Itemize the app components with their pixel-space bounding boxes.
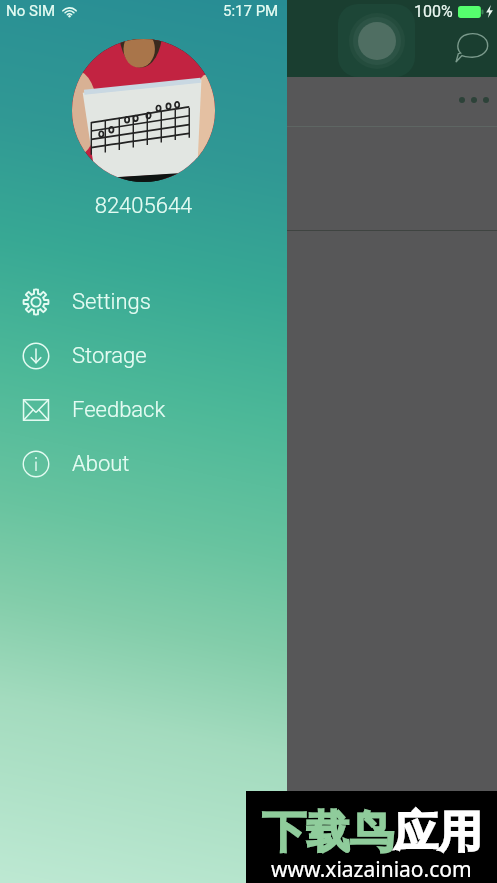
button[interactable]: Messages xyxy=(449,25,493,69)
staticText: 应用 xyxy=(394,805,482,860)
staticText: Storage xyxy=(72,343,147,369)
staticText: About xyxy=(72,451,130,477)
staticText: 100% xyxy=(414,2,453,21)
staticText: No SIM xyxy=(6,2,56,20)
staticText: Feedback xyxy=(72,397,166,423)
staticText: Settings xyxy=(72,289,151,315)
button[interactable]: About xyxy=(0,437,287,491)
button[interactable]: Feedback xyxy=(0,383,287,437)
staticText: 82405644 xyxy=(0,193,287,219)
button[interactable]: Storage xyxy=(0,329,287,383)
staticText: www.xiazainiao.com xyxy=(271,855,472,883)
staticText: 下载鸟 xyxy=(262,805,394,860)
button[interactable]: Profile xyxy=(338,4,415,77)
button[interactable]: Settings xyxy=(0,275,287,329)
staticText: 5:17 PM xyxy=(223,2,279,20)
